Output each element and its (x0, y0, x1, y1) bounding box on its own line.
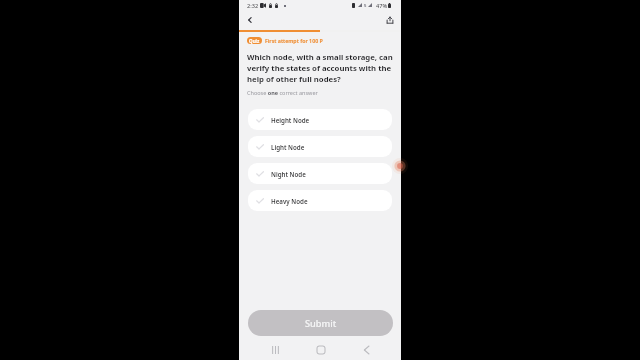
button[interactable]: Home (314, 343, 328, 357)
button[interactable]: Submit (248, 310, 393, 336)
staticText: First attempt for 100 P (265, 37, 323, 44)
button[interactable]: Night Node (248, 163, 392, 184)
staticText: Height Node (271, 116, 310, 124)
staticText: 5 (364, 3, 367, 9)
button[interactable]: Back (243, 13, 256, 26)
button[interactable]: Recent apps (268, 343, 282, 357)
button[interactable]: Share (383, 13, 396, 26)
staticText: Light Node (271, 143, 305, 151)
staticText: Heavy Node (271, 197, 308, 205)
staticText: 2:32 (247, 2, 259, 10)
staticText: Submit (305, 317, 337, 330)
staticText: Which node, with a small storage, can ve… (247, 52, 393, 85)
staticText: 47% (376, 2, 388, 10)
staticText: Night Node (271, 170, 306, 178)
button[interactable]: Heavy Node (248, 190, 392, 211)
button[interactable]: Height Node (248, 109, 392, 130)
button[interactable]: Light Node (248, 136, 392, 157)
button[interactable]: Back (359, 343, 373, 357)
staticText: Quiz (249, 38, 260, 44)
staticText: Choose one correct answer (247, 89, 318, 96)
button[interactable]: Help (392, 158, 408, 174)
